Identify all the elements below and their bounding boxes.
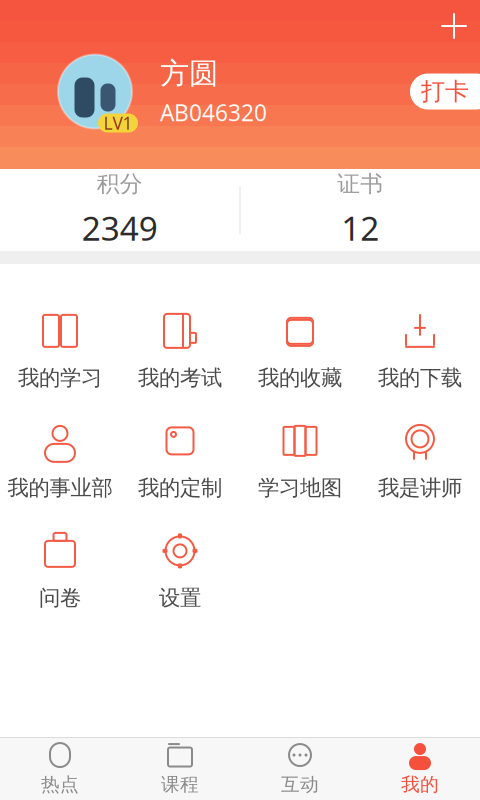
- button[interactable]: 我的下载: [360, 301, 480, 401]
- staticText: 2349: [82, 206, 158, 250]
- staticText: 我的考试: [138, 365, 222, 391]
- button[interactable]: 我是讲师: [360, 411, 480, 511]
- staticText: 我的: [401, 773, 439, 796]
- staticText: 设置: [159, 585, 201, 611]
- staticText: 打卡: [421, 77, 469, 106]
- button[interactable]: 打卡: [410, 73, 480, 109]
- staticText: 我是讲师: [378, 475, 462, 501]
- button[interactable]: 热点: [0, 738, 120, 800]
- button[interactable]: 设置: [120, 521, 240, 621]
- button[interactable]: 课程: [120, 738, 240, 800]
- staticText: 我的定制: [138, 475, 222, 501]
- staticText: 热点: [41, 773, 79, 796]
- staticText: 我的学习: [18, 365, 102, 391]
- button[interactable]: 我的学习: [0, 301, 120, 401]
- button[interactable]: 我的: [360, 738, 480, 800]
- button[interactable]: 学习地图: [240, 411, 360, 511]
- staticText: AB046320: [160, 97, 267, 128]
- staticText: 积分: [97, 170, 143, 198]
- staticText: LV1: [103, 111, 132, 134]
- staticText: 12: [341, 206, 379, 250]
- button[interactable]: Add: [428, 0, 480, 52]
- staticText: 证书: [337, 170, 383, 198]
- staticText: 问卷: [39, 585, 81, 611]
- button[interactable]: 我的定制: [120, 411, 240, 511]
- button[interactable]: 积分: [0, 169, 239, 251]
- staticText: 课程: [161, 773, 199, 796]
- staticText: 我的事业部: [7, 475, 112, 501]
- button[interactable]: 我的收藏: [240, 301, 360, 401]
- button[interactable]: 互动: [240, 738, 360, 800]
- button[interactable]: 我的事业部: [0, 411, 120, 511]
- button[interactable]: 我的考试: [120, 301, 240, 401]
- staticText: 我的下载: [378, 365, 462, 391]
- staticText: 互动: [281, 773, 319, 796]
- staticText: 方圆: [160, 55, 218, 91]
- staticText: 学习地图: [258, 475, 342, 501]
- button[interactable]: 证书: [240, 169, 480, 251]
- staticText: 我的收藏: [258, 365, 342, 391]
- button[interactable]: 问卷: [0, 521, 120, 621]
